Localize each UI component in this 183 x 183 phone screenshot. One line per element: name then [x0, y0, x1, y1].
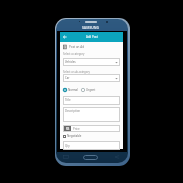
- button[interactable]: Back: [114, 155, 120, 159]
- staticText: Add Post: [86, 35, 98, 39]
- staticText: Normal: [68, 88, 78, 92]
- button[interactable]: Negotiable: [63, 134, 82, 138]
- staticText: RS: [66, 127, 70, 131]
- staticText: Qty: [65, 144, 70, 148]
- button[interactable]: Normal: [63, 88, 78, 92]
- button[interactable]: Vehicles: [63, 58, 120, 66]
- staticText: Title: [65, 98, 71, 102]
- button[interactable]: Qty: [63, 141, 120, 150]
- button[interactable]: Urgent: [81, 88, 96, 92]
- staticText: Negotiable: [67, 134, 82, 138]
- button[interactable]: Recent apps: [63, 155, 69, 159]
- staticText: Post an Ad: [69, 45, 85, 49]
- staticText: SAMSUNG: [82, 25, 100, 30]
- staticText: Select a sub-category: [63, 70, 90, 74]
- button[interactable]: Title: [63, 96, 120, 105]
- staticText: Select a category: [63, 52, 85, 56]
- button[interactable]: Post an Ad: [63, 44, 85, 49]
- button[interactable]: Navigate back: [63, 35, 67, 39]
- staticText: Vehicles: [65, 60, 76, 64]
- staticText: Price: [73, 127, 80, 131]
- button[interactable]: Navigate back: [60, 32, 123, 42]
- button[interactable]: Car: [63, 74, 120, 82]
- button[interactable]: RS: [63, 125, 120, 132]
- button[interactable]: Home: [83, 155, 98, 160]
- staticText: Urgent: [86, 88, 96, 92]
- staticText: Car: [65, 76, 70, 80]
- button[interactable]: Description: [63, 107, 120, 122]
- staticText: Description: [65, 109, 81, 113]
